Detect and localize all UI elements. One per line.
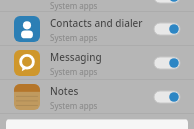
button[interactable]: Toggle app on [154, 23, 180, 35]
button[interactable]: Toggle app on [154, 57, 180, 69]
button[interactable]: Notes [0, 80, 194, 114]
button[interactable]: Contacts and dialer [0, 12, 194, 46]
staticText: System apps [50, 32, 98, 43]
staticText: System apps [50, 0, 98, 11]
staticText: System apps [50, 66, 98, 77]
staticText: Messaging [50, 50, 102, 64]
staticText: System apps [50, 100, 98, 111]
staticText: Contacts and dialer [50, 16, 143, 30]
staticText: Notes [50, 84, 79, 98]
button[interactable]: System apps [0, 0, 194, 12]
button[interactable]: Messaging [0, 46, 194, 80]
button[interactable]: Toggle app on [154, 91, 180, 103]
button[interactable] [6, 119, 188, 129]
button[interactable]: Toggle app on [154, 0, 180, 3]
